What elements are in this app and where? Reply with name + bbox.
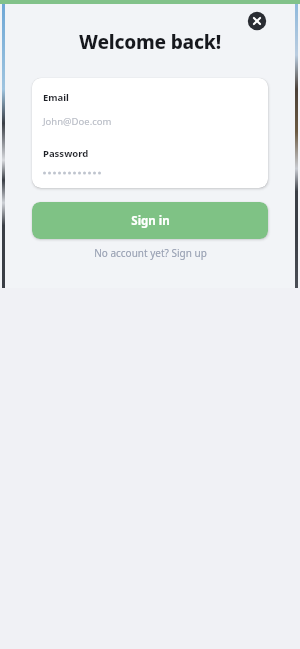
staticText: No account yet? Sign up <box>94 246 207 260</box>
button[interactable]: Close <box>246 10 268 32</box>
staticText: John@Doe.com <box>43 115 112 128</box>
button[interactable]: No account yet? Sign up <box>32 244 268 262</box>
button[interactable]: Email <box>32 89 268 130</box>
staticText: Sign in <box>131 213 170 229</box>
staticText: Welcome back! <box>79 29 221 55</box>
staticText: Email <box>43 91 69 104</box>
staticText: Password <box>43 147 89 160</box>
button[interactable]: Sign in <box>32 202 268 239</box>
button[interactable]: Password <box>32 145 268 179</box>
